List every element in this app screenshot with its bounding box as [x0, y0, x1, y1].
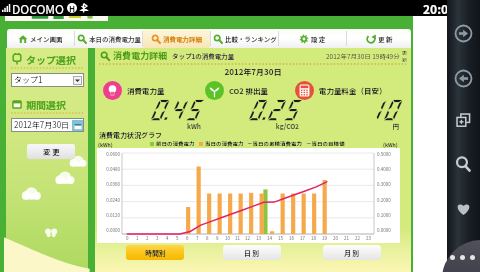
staticText: 0.25: [247, 97, 299, 123]
staticText: 2012年7月30日: [14, 119, 70, 131]
staticText: 電力量料金（目安）: [319, 85, 387, 96]
staticText: 当日の消費電力: [205, 140, 244, 148]
staticText: 0.0000: [97, 227, 120, 234]
staticText: タップ1: [14, 74, 43, 86]
staticText: 0: [126, 235, 129, 242]
staticText: 6: [186, 235, 189, 242]
staticText: 0.0600: [97, 151, 120, 158]
button[interactable]: 本日の消費電力量: [75, 29, 142, 48]
staticText: 15: [278, 235, 283, 242]
staticText: 13: [256, 235, 261, 242]
staticText: 0.0480: [97, 166, 120, 173]
staticText: 10: [366, 97, 399, 123]
staticText: 10: [225, 235, 230, 242]
staticText: 2012年7月30日: [95, 66, 411, 78]
staticText: 20: [333, 235, 338, 242]
staticText: DOCOMO: [12, 0, 64, 16]
staticText: 時間別: [145, 248, 166, 258]
staticText: 消費電力詳細: [113, 49, 168, 62]
staticText: 0.0240: [97, 197, 120, 204]
staticText: 0.45: [149, 97, 201, 123]
staticText: 14: [267, 235, 272, 242]
staticText: 22: [355, 235, 360, 242]
staticText: H: [69, 3, 76, 13]
staticText: タップ選択: [26, 52, 76, 66]
staticText: 前日の消費電力: [156, 140, 195, 148]
staticText: 月 別: [344, 248, 360, 258]
staticText: 新: [402, 56, 408, 63]
staticText: －当日の目標値: [306, 140, 345, 148]
staticText: 0.4000: [377, 166, 400, 173]
staticText: 2: [146, 235, 149, 242]
staticText: 18: [311, 235, 316, 242]
staticText: (kWh): [383, 141, 398, 148]
staticText: 1: [136, 235, 139, 242]
staticText: kg/CO2: [275, 121, 299, 130]
staticText: 円: [392, 121, 399, 130]
staticText: 21: [344, 235, 349, 242]
staticText: 17: [300, 235, 305, 242]
staticText: 更: [402, 49, 408, 56]
staticText: 更 新: [378, 34, 393, 43]
button[interactable]: 月 別: [323, 245, 381, 260]
button[interactable]: 消費電力詳細: [143, 29, 210, 48]
button[interactable]: Search: [454, 155, 473, 174]
staticText: 11: [235, 235, 240, 242]
staticText: 期間選択: [26, 97, 66, 111]
staticText: 0.2000: [377, 197, 400, 204]
staticText: 本日の消費電力量: [89, 34, 141, 43]
staticText: CO2 排出量: [229, 85, 268, 96]
staticText: メイン画面: [30, 34, 63, 43]
staticText: 23: [366, 235, 371, 242]
staticText: 5: [176, 235, 179, 242]
button[interactable]: 日 別: [223, 245, 281, 260]
staticText: 7: [196, 235, 199, 242]
staticText: 19: [322, 235, 327, 242]
button[interactable]: Bookmarks: [454, 199, 473, 218]
staticText: 9: [216, 235, 219, 242]
staticText: 消費電力量: [127, 85, 165, 96]
staticText: kWh: [186, 121, 201, 130]
staticText: 3: [156, 235, 159, 242]
staticText: 2012年7月30日 19時49分: [326, 51, 400, 60]
button[interactable]: 更 新: [347, 29, 411, 48]
button[interactable]: メイン画面: [7, 29, 74, 48]
staticText: 0.0120: [97, 212, 120, 219]
button[interactable]: Back: [454, 69, 473, 88]
button[interactable]: 2012年7月30日: [12, 119, 83, 131]
staticText: 変 更: [43, 146, 60, 157]
staticText: 0.1000: [377, 212, 400, 219]
staticText: 比較・ランキング: [225, 34, 277, 43]
button[interactable]: 比較・ランキング: [211, 29, 278, 48]
staticText: －当日の累積消費電力: [247, 140, 303, 148]
staticText: 0.3000: [377, 181, 400, 188]
button[interactable]: Menu: [450, 255, 475, 260]
staticText: 0.5000: [377, 151, 400, 158]
staticText: 12: [245, 235, 250, 242]
staticText: 設 定: [311, 34, 326, 43]
button[interactable]: タップ1: [12, 74, 83, 86]
button[interactable]: Forward: [454, 24, 473, 43]
button[interactable]: Recent apps: [454, 111, 473, 130]
button[interactable]: 時間別: [126, 245, 184, 260]
staticText: 8: [206, 235, 209, 242]
staticText: 消費電力状況グラフ: [99, 130, 162, 140]
button[interactable]: 設 定: [279, 29, 346, 48]
staticText: 日 別: [244, 248, 260, 258]
staticText: (kWh): [98, 141, 113, 148]
staticText: 消費電力詳細: [163, 34, 202, 43]
staticText: 20:01: [423, 0, 456, 16]
staticText: 0.0360: [97, 181, 120, 188]
staticText: 4: [166, 235, 169, 242]
staticText: 16: [289, 235, 294, 242]
staticText: 0.0000: [377, 227, 400, 234]
staticText: タップ1の消費電力量: [172, 51, 235, 60]
button[interactable]: 変 更: [27, 144, 75, 159]
